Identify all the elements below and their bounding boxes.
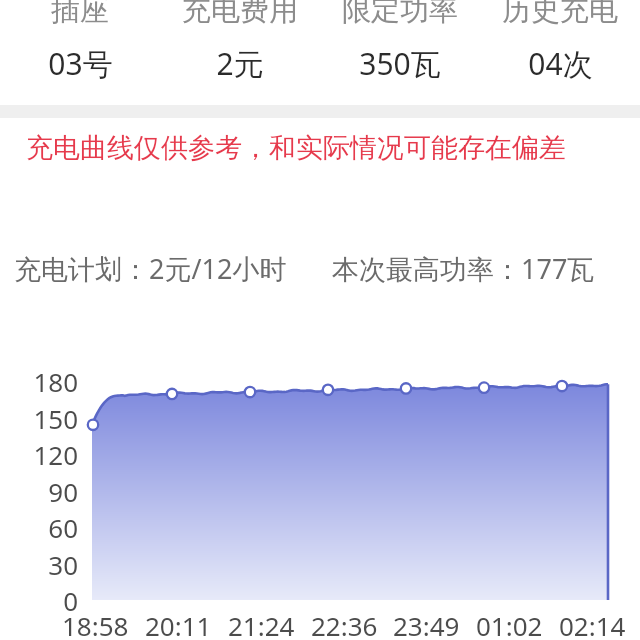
staticText: 04次	[528, 43, 593, 84]
staticText: 0	[0, 583, 78, 618]
staticText: 02:14	[559, 608, 626, 640]
staticText: 350瓦	[359, 43, 441, 84]
button[interactable]: 插座	[0, 0, 160, 96]
staticText: 22:36	[311, 608, 378, 640]
staticText: 150	[0, 401, 78, 436]
staticText: 插座	[51, 0, 109, 29]
staticText: 01:02	[476, 608, 543, 640]
staticText: 20:11	[145, 608, 212, 640]
staticText: 充电计划：2元/12小时	[14, 250, 314, 287]
staticText: 充电费用	[182, 0, 298, 29]
button[interactable]: 限定功率	[320, 0, 480, 96]
staticText: 180	[0, 364, 78, 399]
staticText: 限定功率	[342, 0, 458, 29]
button[interactable]: 历史充电	[480, 0, 640, 96]
staticText: 60	[0, 510, 78, 545]
staticText: 本次最高功率：177瓦	[332, 250, 632, 287]
button[interactable]: 充电费用	[160, 0, 320, 96]
staticText: 03号	[48, 43, 113, 84]
staticText: 23:49	[393, 608, 460, 640]
staticText: 2元	[216, 43, 264, 84]
staticText: 18:58	[62, 608, 129, 640]
staticText: 30	[0, 547, 78, 582]
staticText: 历史充电	[502, 0, 618, 29]
staticText: 21:24	[228, 608, 295, 640]
staticText: 90	[0, 474, 78, 509]
staticText: 充电曲线仅供参考，和实际情况可能存在偏差	[26, 131, 600, 165]
other: Charging power chart	[0, 0, 640, 640]
staticText: 120	[0, 437, 78, 472]
